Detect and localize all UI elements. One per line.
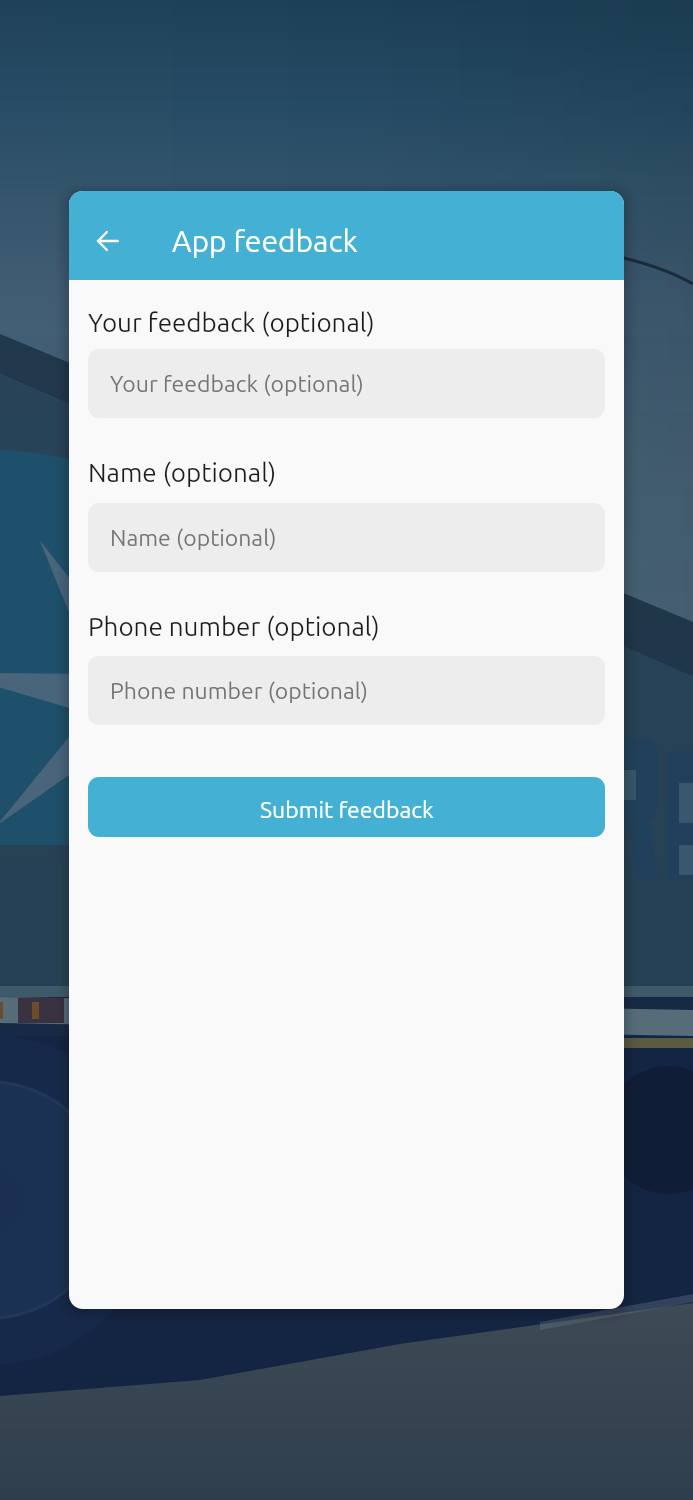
button[interactable]: Phone number (optional)	[88, 656, 605, 725]
button[interactable]: Your feedback (optional)	[88, 349, 605, 418]
staticText: Name (optional)	[88, 458, 277, 487]
button[interactable]: Name (optional)	[88, 503, 605, 572]
staticText: Phone number (optional)	[88, 612, 380, 641]
button[interactable]: Submit feedback	[88, 777, 605, 837]
staticText: Phone number (optional)	[110, 678, 369, 704]
staticText: Your feedback (optional)	[88, 308, 375, 337]
button[interactable]: Back	[80, 213, 136, 269]
staticText: App feedback	[172, 224, 358, 258]
staticText: Submit feedback	[260, 797, 434, 823]
staticText: Your feedback (optional)	[110, 371, 364, 397]
staticText: Name (optional)	[110, 525, 277, 551]
